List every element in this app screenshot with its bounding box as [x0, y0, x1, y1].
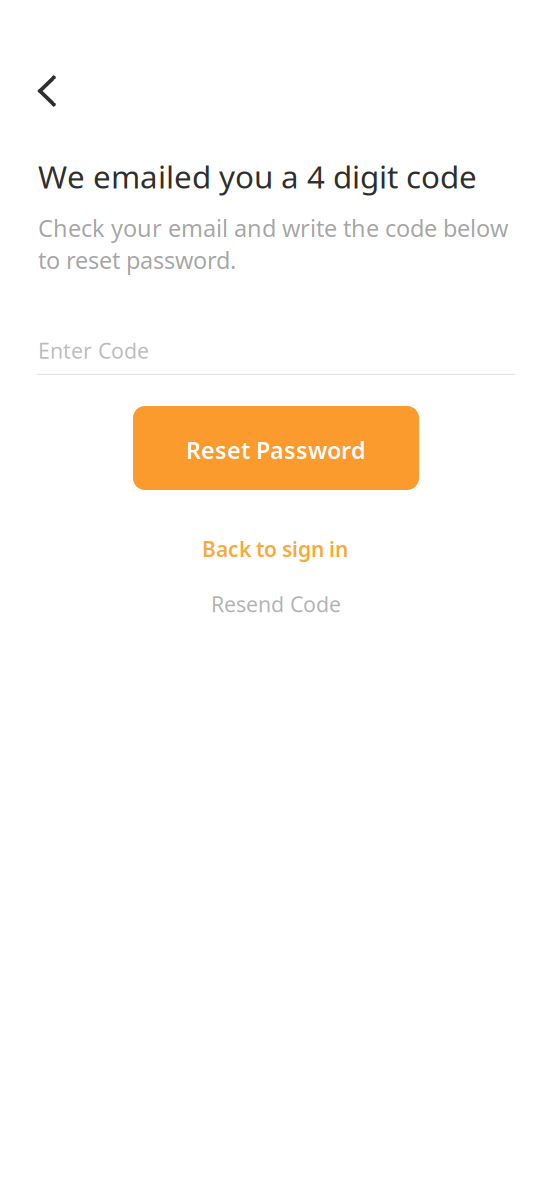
button[interactable]: Back: [23, 67, 71, 115]
button[interactable]: Resend Code: [210, 590, 342, 618]
staticText: Resend Code: [211, 589, 341, 619]
button[interactable]: Back to sign in: [195, 535, 355, 563]
button[interactable]: Reset Password: [133, 406, 419, 490]
button[interactable]: Enter Code: [37, 329, 515, 375]
staticText: Back to sign in: [202, 535, 348, 563]
staticText: Check your email and write the code belo…: [38, 212, 508, 276]
staticText: Reset Password: [186, 434, 366, 466]
staticText: Enter Code: [38, 336, 149, 365]
staticText: We emailed you a 4 digit code: [38, 155, 477, 198]
